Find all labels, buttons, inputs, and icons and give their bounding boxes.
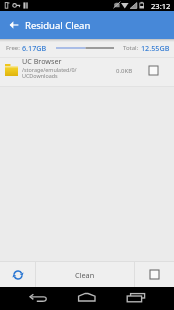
- staticText: Clean: [75, 270, 95, 280]
- staticText: 12.55GB: [141, 43, 170, 53]
- staticText: /storage/emulated/0/ UCDownloads: [22, 66, 77, 80]
- button[interactable]: Rescan: [0, 262, 35, 287]
- staticText: Total:: [123, 44, 139, 52]
- staticText: 0.0KB: [116, 67, 133, 75]
- button[interactable]: Home: [58, 287, 116, 310]
- button[interactable]: Select all: [135, 262, 174, 287]
- staticText: 6.17GB: [22, 43, 47, 53]
- button[interactable]: UC Browser: [0, 58, 174, 86]
- staticText: 23:12: [151, 1, 171, 11]
- button[interactable]: Recent apps: [116, 287, 174, 310]
- button[interactable]: Select UC Browser: [149, 66, 158, 75]
- button[interactable]: Back: [0, 11, 27, 39]
- staticText: Free:: [6, 44, 20, 52]
- button[interactable]: Clean: [36, 262, 134, 287]
- button[interactable]: Back: [0, 287, 58, 310]
- staticText: UC Browser: [22, 56, 62, 66]
- staticText: Residual Clean: [25, 19, 91, 32]
